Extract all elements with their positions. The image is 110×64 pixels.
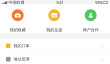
button[interactable]: 地址管理 (0, 53, 110, 64)
button[interactable]: 我的收藏 (0, 9, 36, 32)
staticText: 9:41 (56, 0, 63, 5)
staticText: 我的足迹 (46, 27, 62, 32)
staticText: › (102, 56, 104, 63)
staticText: 我的收藏 (10, 27, 26, 32)
staticText: 地址管理 (13, 57, 29, 62)
button[interactable]: 商户合作 (72, 9, 109, 32)
staticText: 商户合作 (83, 27, 99, 32)
staticText: 中国联通 (8, 0, 24, 5)
staticText: 我的订单 (13, 43, 29, 48)
button[interactable]: 我的足迹 (36, 9, 72, 32)
staticText: › (102, 42, 104, 49)
staticText: 93% (95, 0, 102, 5)
button[interactable]: 我的订单 (0, 39, 110, 52)
